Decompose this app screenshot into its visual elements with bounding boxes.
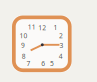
staticText: 6 [41, 59, 45, 68]
staticText: 7 [26, 59, 30, 68]
staticText: 9 [21, 41, 25, 50]
staticText: 3 [59, 41, 63, 50]
staticText: 11 [28, 22, 36, 31]
staticText: 4 [59, 52, 63, 61]
staticText: 12 [38, 23, 46, 32]
staticText: 5 [50, 59, 54, 68]
staticText: 8 [22, 52, 26, 61]
staticText: 10 [19, 31, 27, 40]
staticText: 1 [53, 23, 57, 32]
staticText: 2 [59, 31, 63, 40]
